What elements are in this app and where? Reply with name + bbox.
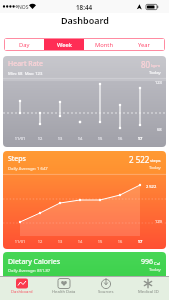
staticText: Health Data xyxy=(52,289,76,295)
staticText: NOS xyxy=(18,4,29,11)
staticText: Today xyxy=(149,267,161,273)
staticText: Today xyxy=(149,165,161,171)
staticText: Year xyxy=(138,41,150,49)
staticText: steps xyxy=(150,158,161,164)
staticText: 16 xyxy=(116,136,124,141)
button[interactable]: Medical ID xyxy=(127,277,169,300)
staticText: Month xyxy=(95,41,114,49)
staticText: 17 xyxy=(136,239,144,244)
staticText: 18:44 xyxy=(76,3,93,12)
staticText: 123 xyxy=(155,80,162,85)
button[interactable]: Heart Rate xyxy=(3,56,166,147)
staticText: Medical ID xyxy=(138,289,159,295)
staticText: 2 522 xyxy=(146,184,157,189)
button[interactable]: Steps xyxy=(3,151,166,249)
staticText: Heart Rate xyxy=(8,59,44,69)
staticText: 129 xyxy=(155,219,162,224)
staticText: 13 xyxy=(56,136,64,141)
staticText: Dietary Calories xyxy=(8,257,60,267)
staticText: Day xyxy=(19,41,30,49)
staticText: Daily Average: 1 647 xyxy=(8,166,48,172)
staticText: 11/01 xyxy=(12,239,28,244)
staticText: 12 xyxy=(36,136,44,141)
staticText: 15 xyxy=(96,239,104,244)
button[interactable]: Month xyxy=(84,39,124,50)
staticText: 68 xyxy=(157,127,162,132)
staticText: Min: 68 Max: 123 xyxy=(8,71,43,77)
staticText: 14 xyxy=(76,239,84,244)
staticText: Sources xyxy=(98,289,114,295)
button[interactable]: Dietary Calories xyxy=(3,252,166,300)
staticText: 16 xyxy=(116,239,124,244)
staticText: bpm xyxy=(151,63,161,69)
staticText: Today xyxy=(149,70,161,76)
button[interactable]: Week xyxy=(44,39,84,50)
staticText: Cal xyxy=(154,261,161,267)
staticText: 14 xyxy=(76,136,84,141)
staticText: Dashboard xyxy=(11,289,33,295)
staticText: 12 xyxy=(36,239,44,244)
staticText: 2 522 xyxy=(129,154,150,165)
button[interactable]: Health Data xyxy=(43,277,85,300)
staticText: Daily Average: 851.87 xyxy=(8,268,51,274)
staticText: 996 xyxy=(141,257,154,267)
button[interactable]: Sources xyxy=(85,277,127,300)
staticText: 80 xyxy=(141,59,151,70)
button[interactable]: Year xyxy=(124,39,164,50)
staticText: 17 xyxy=(136,136,144,141)
staticText: Steps xyxy=(8,154,26,164)
button[interactable]: Dashboard xyxy=(0,277,43,300)
staticText: Week xyxy=(57,41,72,49)
staticText: Dashboard xyxy=(61,14,109,26)
staticText: 11/01 xyxy=(12,136,28,141)
staticText: 13 xyxy=(56,239,64,244)
button[interactable]: Day xyxy=(5,39,44,50)
staticText: 15 xyxy=(96,136,104,141)
